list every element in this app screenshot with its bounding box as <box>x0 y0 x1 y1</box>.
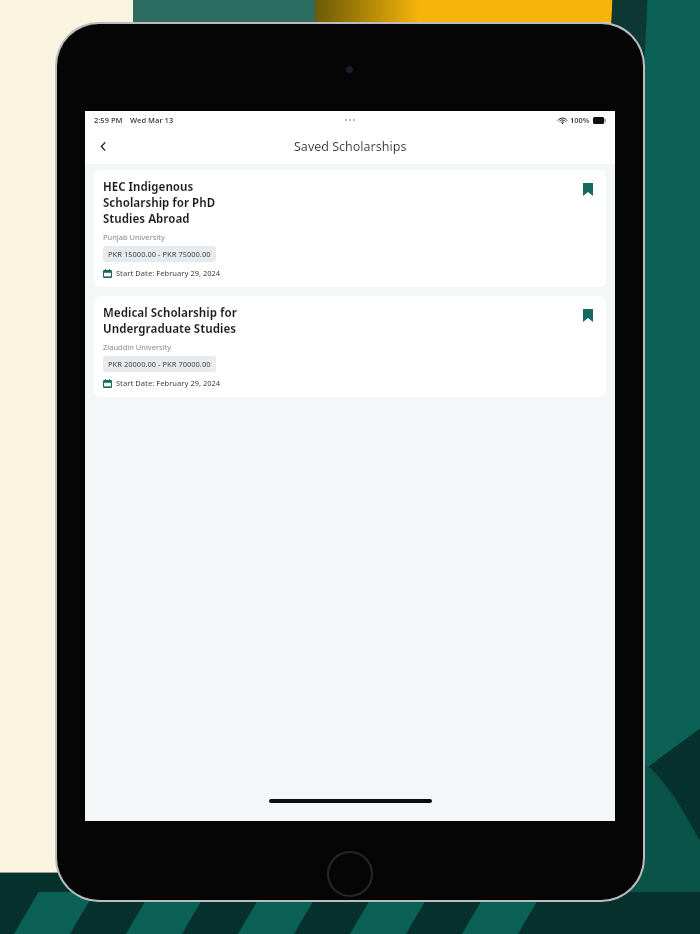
button[interactable]: Remove bookmark <box>579 306 597 324</box>
staticText: PKR 20000.00 - PKR 70000.00 <box>108 359 211 369</box>
staticText: PKR 15000.00 - PKR 75000.00 <box>108 249 211 259</box>
staticText: Saved Scholarships <box>294 138 407 155</box>
staticText: Punjab University <box>103 232 165 242</box>
staticText: HEC Indigenous <box>103 179 194 195</box>
staticText: Start Date: February 29, 2024 <box>116 268 221 278</box>
staticText: 2:59 PM <box>94 115 123 125</box>
button[interactable]: Back <box>88 131 118 161</box>
staticText: Medical Scholarship for <box>103 305 237 321</box>
staticText: 100% <box>570 115 590 125</box>
staticText: Start Date: February 29, 2024 <box>116 378 221 388</box>
staticText: Scholarship for PhD <box>103 195 216 211</box>
staticText: Wed Mar 13 <box>130 115 174 125</box>
staticText: Studies Abroad <box>103 211 190 227</box>
staticText: Ziauddin University <box>103 342 172 352</box>
staticText: Undergraduate Studies <box>103 321 237 337</box>
button[interactable]: Remove bookmark <box>579 180 597 198</box>
button[interactable]: HEC Indigenous <box>94 170 606 287</box>
button[interactable]: Medical Scholarship for <box>94 296 606 397</box>
